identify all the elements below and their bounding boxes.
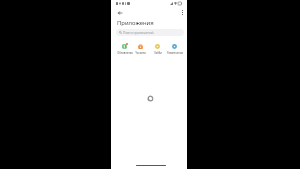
button[interactable]: Back	[115, 8, 124, 17]
button[interactable]: Хобби	[149, 43, 166, 54]
button[interactable]: Поиск приложений	[116, 29, 184, 36]
staticText: Поиск приложений	[123, 31, 154, 35]
button[interactable]: Развлечения	[166, 43, 183, 54]
staticText: Часовня	[135, 51, 146, 54]
button[interactable]: Обновления	[116, 43, 133, 54]
button[interactable]: More options	[178, 8, 187, 17]
staticText: Хобби	[154, 51, 162, 54]
staticText: Приложения	[117, 19, 154, 27]
staticText: Обновления	[117, 51, 133, 54]
staticText: Развлечения	[167, 51, 183, 54]
button[interactable]: Часовня	[132, 43, 149, 54]
